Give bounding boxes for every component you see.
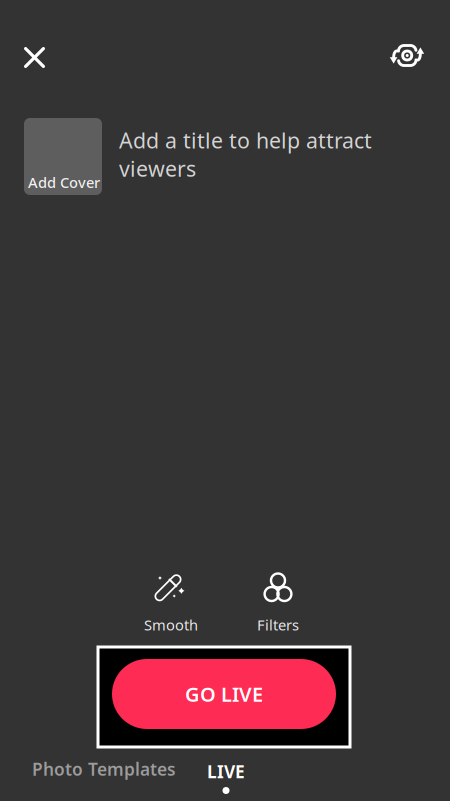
button[interactable]: Smooth [126, 569, 216, 634]
button[interactable]: Close [12, 35, 56, 79]
staticText: GO LIVE [185, 681, 263, 707]
button[interactable]: Photo Templates [29, 754, 179, 784]
button[interactable]: Add Cover [24, 118, 102, 195]
staticText: Smooth [144, 615, 198, 634]
staticText: Add a title to help attract viewers [119, 126, 372, 183]
button[interactable]: LIVE [196, 759, 256, 795]
staticText: Add Cover [28, 172, 100, 192]
button[interactable]: Flip camera [384, 37, 428, 81]
button[interactable]: Filters [233, 569, 323, 634]
staticText: Photo Templates [32, 757, 176, 780]
button[interactable]: Add a title to help attract viewers [119, 126, 375, 183]
button[interactable]: GO LIVE [98, 647, 350, 747]
staticText: Filters [257, 615, 299, 634]
staticText: LIVE [207, 760, 245, 783]
